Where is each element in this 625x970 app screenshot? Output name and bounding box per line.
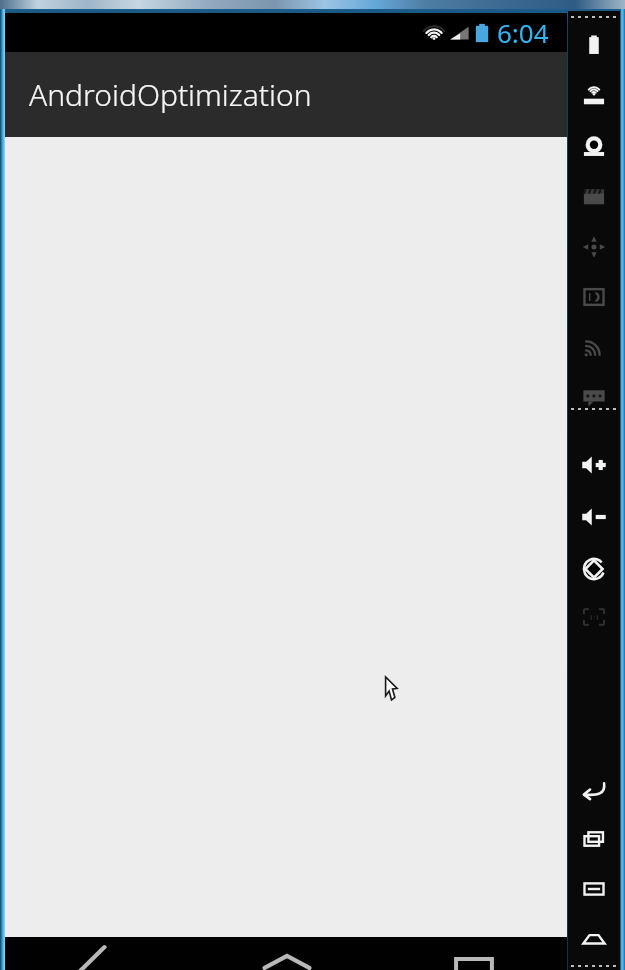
button[interactable]: Volume down (568, 502, 620, 532)
button[interactable]: Recents (568, 824, 620, 854)
button[interactable]: Home (193, 937, 380, 970)
button[interactable]: Back (5, 937, 193, 970)
button[interactable]: Rotate (568, 554, 620, 584)
button[interactable]: Screen record (568, 182, 620, 212)
button[interactable]: Back (568, 774, 620, 804)
button[interactable]: Recents (380, 937, 567, 970)
button[interactable]: AndroidOptimization (5, 52, 567, 137)
button[interactable]: Volume up (568, 450, 620, 480)
staticText: 6:04 (497, 15, 549, 50)
button[interactable]: Camera (568, 132, 620, 162)
staticText: AndroidOptimization (29, 74, 312, 115)
button[interactable]: Battery (568, 30, 620, 60)
button[interactable]: Menu (568, 874, 620, 904)
button[interactable]: Home (568, 924, 620, 954)
button[interactable]: Identifiers (568, 282, 620, 312)
button[interactable]: Actual size (568, 602, 620, 632)
button[interactable]: Accelerometer (568, 232, 620, 262)
button[interactable]: GPS (568, 82, 620, 112)
button[interactable]: Network (568, 332, 620, 362)
button[interactable]: SMS (568, 382, 620, 412)
